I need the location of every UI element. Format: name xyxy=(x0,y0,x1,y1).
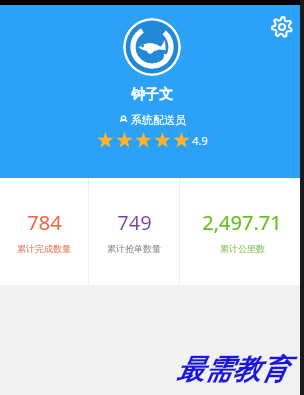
button[interactable]: Profile photo xyxy=(123,18,181,76)
button[interactable]: Settings xyxy=(269,14,295,40)
button[interactable]: 2,497.71 xyxy=(180,178,304,285)
staticText: 749 xyxy=(117,209,152,236)
button[interactable]: 784 xyxy=(0,178,88,285)
staticText: 2,497.71 xyxy=(202,209,282,236)
staticText: 最需教育 xyxy=(176,352,288,387)
staticText: 累计抢单数量 xyxy=(107,243,161,254)
button[interactable]: 749 xyxy=(89,178,179,285)
staticText: 系统配送员 xyxy=(131,113,186,127)
staticText: 钟子文 xyxy=(131,86,173,104)
staticText: 784 xyxy=(27,209,62,236)
staticText: 累计完成数量 xyxy=(17,243,71,254)
staticText: 4.9 xyxy=(192,133,208,148)
staticText: 累计公里数 xyxy=(220,243,265,254)
